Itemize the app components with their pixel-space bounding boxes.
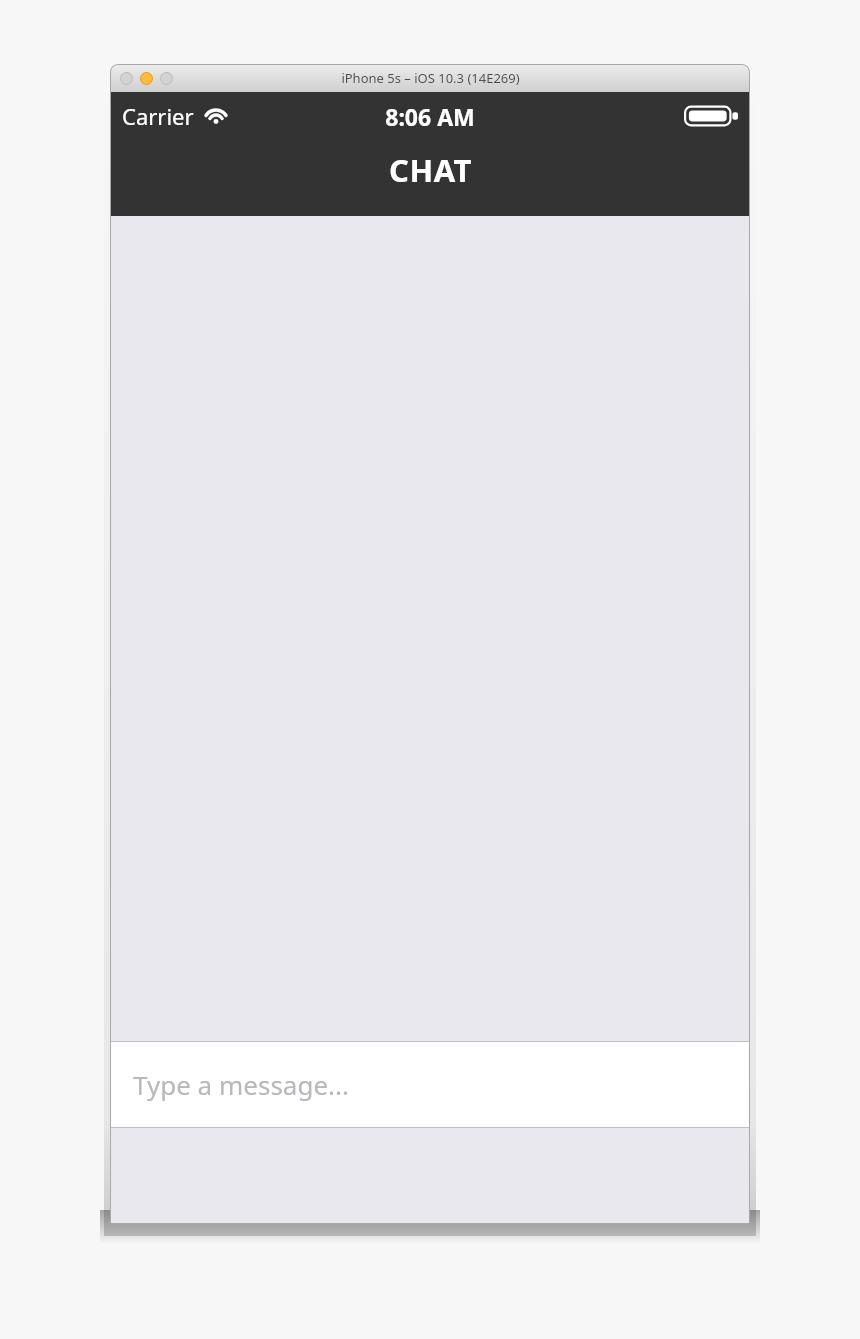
staticText: Type a message...: [133, 1067, 349, 1102]
other: Wi-Fi: [203, 106, 229, 126]
staticText: CHAT: [389, 149, 472, 191]
staticText: 8:06 AM: [385, 101, 475, 132]
button[interactable]: Zoom: [160, 72, 173, 85]
staticText: Carrier: [122, 101, 194, 131]
button[interactable]: Minimize: [140, 72, 153, 85]
staticText: iPhone 5s – iOS 10.3 (14E269): [341, 69, 520, 87]
other: Battery full: [684, 103, 738, 129]
button[interactable]: Type a message...: [110, 1042, 750, 1127]
button[interactable]: Close: [120, 72, 133, 85]
